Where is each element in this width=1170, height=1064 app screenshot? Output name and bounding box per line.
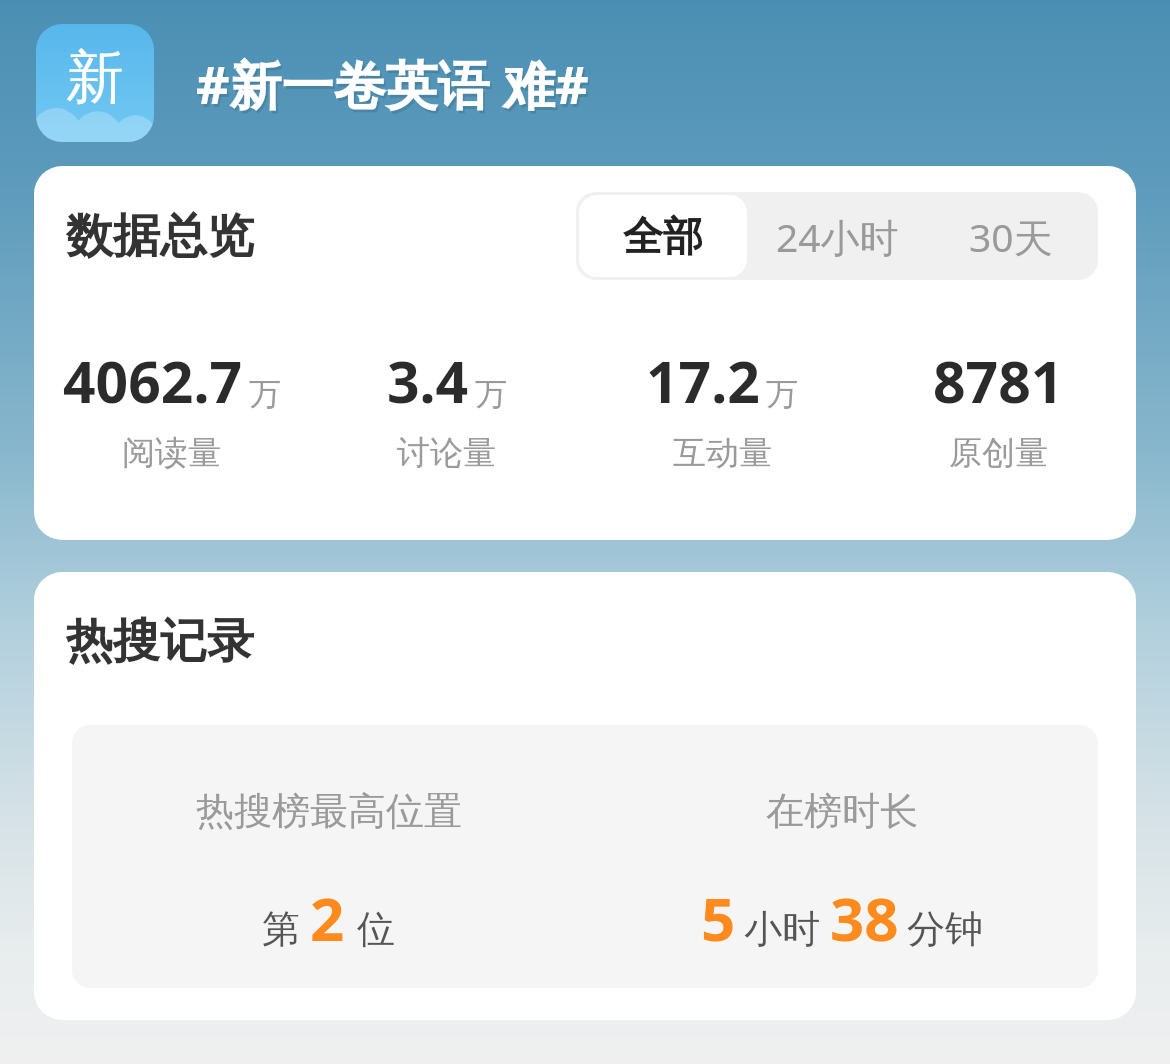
staticText: 38 — [830, 877, 899, 959]
staticText: 数据总览 — [66, 207, 254, 266]
button[interactable]: 17.2 — [584, 342, 860, 474]
staticText: 24小时 — [776, 210, 899, 263]
staticText: 4062.7 — [63, 342, 243, 420]
staticText: #新一卷英语 难# — [198, 51, 591, 122]
staticText: 位 — [357, 905, 395, 953]
staticText: 万 — [475, 374, 507, 414]
staticText: 原创量 — [949, 432, 1048, 474]
staticText: 3.4 — [387, 342, 469, 420]
staticText: 热搜记录 — [66, 612, 254, 671]
staticText: 分钟 — [907, 905, 983, 953]
button[interactable]: 30天 — [924, 192, 1098, 280]
staticText: 全部 — [623, 211, 703, 261]
staticText: 新 — [66, 41, 124, 114]
staticText: #新一卷英语 难# — [196, 48, 589, 119]
staticText: 17.2 — [646, 342, 760, 420]
staticText: 热搜榜最高位置 — [196, 787, 462, 835]
staticText: 8781 — [933, 342, 1064, 420]
staticText: 万 — [766, 374, 798, 414]
button[interactable]: 在榜时长 — [585, 725, 1098, 959]
staticText: 第 — [262, 905, 300, 953]
staticText: 万 — [249, 374, 281, 414]
button[interactable]: 3.4 — [309, 342, 584, 474]
button[interactable]: 热搜榜最高位置 — [72, 725, 585, 959]
staticText: 5 — [701, 877, 736, 959]
button[interactable]: 全部 — [579, 195, 747, 277]
staticText: 互动量 — [673, 432, 772, 474]
staticText: 小时 — [744, 905, 820, 953]
button[interactable]: 新浪微博 图标 — [36, 24, 154, 142]
staticText: 2 — [310, 877, 345, 959]
button[interactable]: 4062.7 — [34, 342, 309, 474]
staticText: 在榜时长 — [766, 787, 918, 835]
staticText: 30天 — [969, 210, 1053, 263]
staticText: 阅读量 — [122, 432, 221, 474]
staticText: 讨论量 — [397, 432, 496, 474]
button[interactable]: 8781 — [860, 342, 1136, 474]
button[interactable]: 24小时 — [750, 192, 924, 280]
